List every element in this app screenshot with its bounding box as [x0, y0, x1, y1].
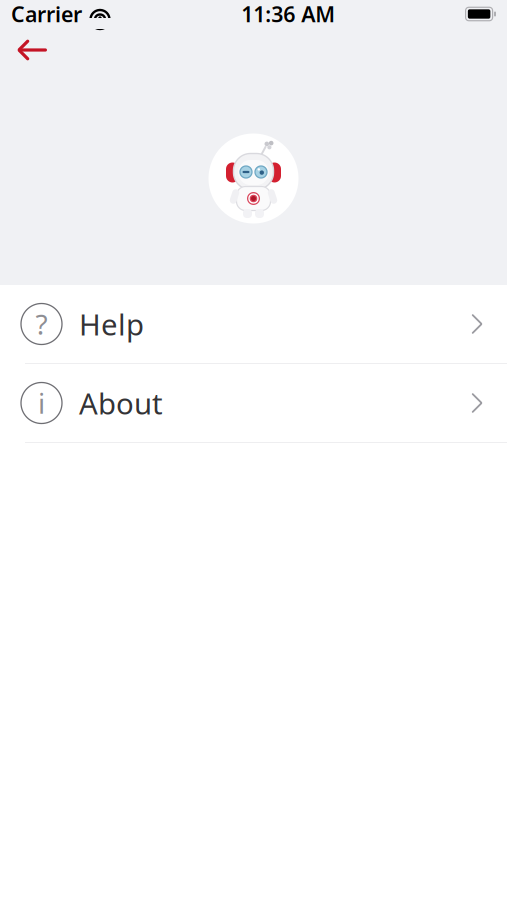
- staticText: i: [38, 384, 45, 422]
- button[interactable]: i: [0, 364, 507, 442]
- button[interactable]: Back: [4, 28, 58, 72]
- staticText: ?: [35, 305, 47, 343]
- button[interactable]: ?: [0, 285, 507, 363]
- staticText: Carrier: [11, 0, 82, 28]
- staticText: Help: [79, 304, 144, 343]
- staticText: 11:36 AM: [241, 0, 335, 28]
- staticText: About: [79, 383, 163, 422]
